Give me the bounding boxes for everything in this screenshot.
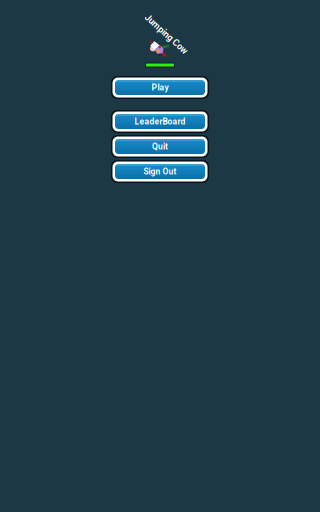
staticText: LeaderBoard [134,116,185,126]
button[interactable]: LeaderBoard [111,110,209,133]
staticText: Play [151,82,168,92]
staticText: Quit [152,141,168,151]
staticText: Jumping Cow [139,29,193,39]
button[interactable]: Quit [111,135,209,158]
staticText: Sign Out [143,166,176,176]
button[interactable]: Play [111,76,209,99]
button[interactable]: Sign Out [111,160,209,183]
